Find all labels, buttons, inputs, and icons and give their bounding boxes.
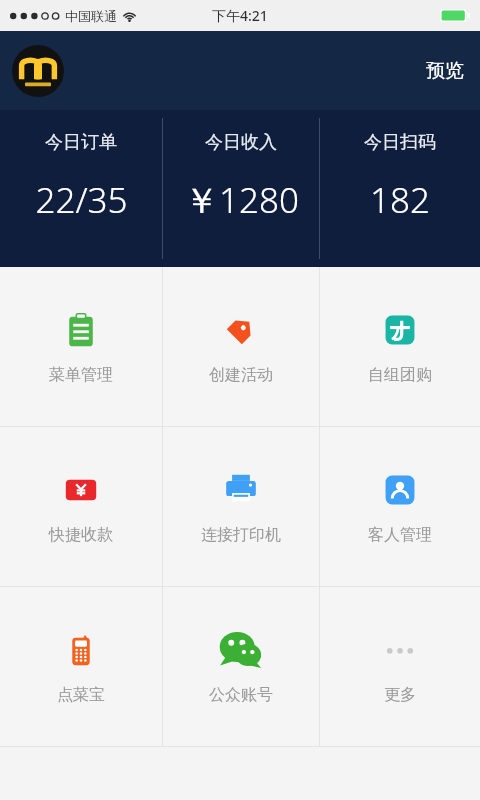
staticText: 客人管理	[368, 525, 432, 545]
staticText: 今日收入	[205, 131, 277, 154]
staticText: 22/35	[35, 176, 128, 224]
button[interactable]: 创建活动	[163, 267, 319, 426]
button[interactable]: 连接打印机	[163, 427, 319, 586]
button[interactable]: 今日扫码	[320, 110, 480, 267]
staticText: 点菜宝	[57, 685, 105, 705]
button[interactable]: Store logo	[12, 45, 64, 97]
button[interactable]: 菜单管理	[0, 267, 162, 426]
staticText: 预览	[426, 59, 464, 83]
button[interactable]: 今日订单	[0, 110, 162, 267]
staticText: 快捷收款	[49, 525, 113, 545]
button[interactable]: 自组团购	[320, 267, 480, 426]
staticText: 下午4:21	[212, 6, 268, 25]
button[interactable]: 点菜宝	[0, 587, 162, 746]
button[interactable]: 快捷收款	[0, 427, 162, 586]
staticText: 182	[370, 176, 430, 224]
staticText: 更多	[384, 685, 416, 705]
button[interactable]: 更多	[320, 587, 480, 746]
staticText: 公众账号	[209, 685, 273, 705]
staticText: 今日订单	[45, 131, 117, 154]
staticText: 今日扫码	[364, 131, 436, 154]
staticText: 创建活动	[209, 365, 273, 385]
button[interactable]: 今日收入	[163, 110, 319, 267]
staticText: 菜单管理	[49, 365, 113, 385]
staticText: ￥1280	[184, 176, 299, 224]
staticText: 连接打印机	[201, 525, 281, 545]
button[interactable]: 公众账号	[163, 587, 319, 746]
button[interactable]: 客人管理	[320, 427, 480, 586]
staticText: 中国联通	[65, 8, 117, 24]
staticText: 自组团购	[368, 365, 432, 385]
button[interactable]: 预览	[410, 51, 480, 91]
